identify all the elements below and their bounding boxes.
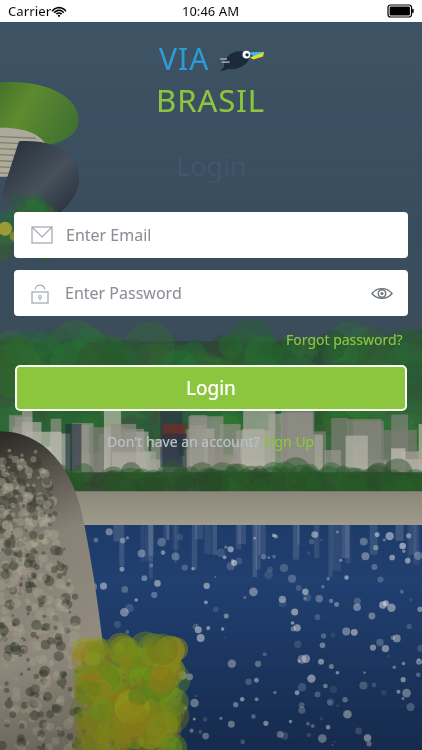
staticText: Enter Email — [66, 224, 152, 246]
staticText: Forgot password? — [286, 330, 403, 349]
button[interactable]: Enter Email — [14, 212, 408, 258]
button[interactable]: Enter Password — [14, 270, 408, 316]
staticText: BRASIL — [156, 79, 266, 121]
button[interactable]: Show password — [368, 279, 396, 307]
button[interactable]: Login — [15, 365, 407, 411]
staticText: Enter Password — [65, 282, 182, 304]
staticText: 10:46 AM — [182, 2, 240, 20]
staticText: Don't have an account? Sign Up — [107, 432, 315, 451]
staticText: Login — [186, 375, 236, 401]
staticText: Login — [176, 147, 247, 184]
staticText: VIA — [159, 38, 210, 79]
button[interactable]: Forgot password? — [282, 326, 407, 353]
button[interactable]: Don't have an account? Sign Up — [101, 429, 321, 454]
staticText: Carrier — [8, 2, 52, 20]
